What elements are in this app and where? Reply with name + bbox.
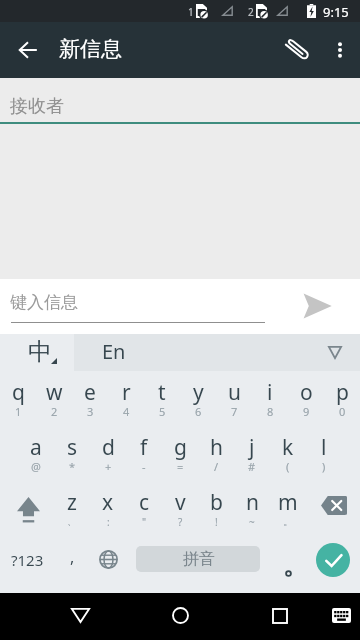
staticText: ,	[70, 546, 75, 568]
button[interactable]: z	[54, 481, 90, 536]
staticText: "	[142, 515, 147, 529]
staticText: 2	[248, 5, 254, 19]
button[interactable]: Shift	[0, 481, 54, 536]
button[interactable]: p	[324, 371, 360, 426]
button[interactable]: t	[144, 371, 180, 426]
button[interactable]: ,	[54, 531, 90, 588]
button[interactable]: j	[234, 426, 270, 481]
staticText: r	[122, 378, 131, 407]
staticText: ~	[249, 515, 255, 529]
staticText: q	[12, 378, 25, 407]
button[interactable]: More options	[320, 22, 360, 78]
button[interactable]: i	[252, 371, 288, 426]
button[interactable]: f	[126, 426, 162, 481]
staticText: *	[69, 459, 76, 474]
staticText: 新信息	[59, 36, 122, 62]
staticText: z	[67, 488, 77, 517]
staticText: 5	[159, 404, 166, 419]
staticText: -	[142, 459, 146, 474]
staticText: 接收者	[10, 95, 64, 118]
staticText: 4	[123, 404, 130, 419]
button[interactable]: d	[90, 426, 126, 481]
staticText: h	[210, 433, 223, 462]
button[interactable]: w	[36, 371, 72, 426]
button[interactable]: g	[162, 426, 198, 481]
staticText: =	[177, 459, 184, 474]
staticText: c	[139, 488, 150, 517]
staticText: k	[282, 433, 294, 462]
staticText: l	[321, 433, 327, 462]
staticText: g	[174, 433, 187, 462]
staticText: 键入信息	[10, 292, 78, 313]
staticText: ?	[178, 515, 183, 529]
staticText: ?123	[11, 550, 44, 570]
staticText: n	[246, 488, 259, 517]
button[interactable]: b	[198, 481, 234, 536]
button[interactable]: Hide keyboard	[320, 337, 350, 367]
button[interactable]: v	[162, 481, 198, 536]
button[interactable]: o	[288, 371, 324, 426]
button[interactable]: k	[270, 426, 306, 481]
staticText: v	[175, 488, 186, 517]
staticText: 9:15	[323, 3, 349, 21]
staticText: j	[249, 433, 255, 462]
button[interactable]: Home	[156, 593, 204, 640]
button[interactable]: Enter	[316, 543, 350, 577]
staticText: :	[107, 515, 110, 529]
staticText: 8	[267, 404, 274, 419]
staticText: 7	[231, 404, 238, 419]
staticText: y	[193, 378, 204, 407]
staticText: 9	[303, 404, 310, 419]
staticText: s	[67, 433, 78, 462]
staticText: 。	[283, 515, 293, 528]
staticText: d	[102, 433, 115, 462]
button[interactable]: Back	[56, 593, 104, 640]
button[interactable]: q	[0, 371, 36, 426]
staticText: (	[286, 459, 290, 474]
staticText: i	[267, 378, 273, 407]
button[interactable]: y	[180, 371, 216, 426]
staticText: t	[158, 378, 166, 407]
button[interactable]: e	[72, 371, 108, 426]
button[interactable]: Switch keyboard	[318, 593, 360, 640]
button[interactable]: En	[74, 334, 360, 371]
button[interactable]: l	[306, 426, 342, 481]
button[interactable]: m	[270, 481, 306, 536]
staticText: m	[278, 488, 298, 517]
button[interactable]: a	[18, 426, 54, 481]
button[interactable]: ?123	[0, 531, 54, 588]
button[interactable]: c	[126, 481, 162, 536]
button[interactable]: u	[216, 371, 252, 426]
staticText: o	[300, 378, 313, 407]
staticText: p	[336, 378, 349, 407]
staticText: !	[215, 515, 218, 529]
button[interactable]: Backspace	[306, 481, 360, 536]
button[interactable]: Send	[295, 284, 339, 328]
staticText: 6	[195, 404, 202, 419]
button[interactable]: r	[108, 371, 144, 426]
button[interactable]: s	[54, 426, 90, 481]
staticText: 3	[87, 404, 94, 419]
staticText: u	[228, 378, 241, 407]
staticText: 中	[28, 337, 52, 367]
button[interactable]: x	[90, 481, 126, 536]
staticText: En	[102, 338, 126, 365]
button[interactable]: n	[234, 481, 270, 536]
staticText: 、	[67, 515, 77, 528]
button[interactable]: Recents	[256, 593, 304, 640]
button[interactable]: h	[198, 426, 234, 481]
staticText: +	[105, 459, 112, 474]
staticText: f	[140, 433, 148, 462]
staticText: )	[322, 459, 326, 474]
button[interactable]	[270, 536, 306, 593]
button[interactable]: Back	[0, 22, 56, 78]
button[interactable]: Attach	[273, 22, 321, 78]
staticText: 0	[339, 404, 346, 419]
button[interactable]: Change language	[90, 531, 126, 588]
staticText: w	[46, 378, 63, 407]
staticText: 拼音	[183, 549, 215, 569]
button[interactable]: 拼音	[136, 546, 260, 572]
staticText: e	[84, 378, 96, 407]
staticText: x	[102, 488, 114, 517]
button[interactable]: 中	[0, 334, 74, 371]
